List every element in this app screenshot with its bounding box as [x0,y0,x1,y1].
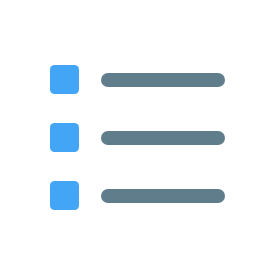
button[interactable]: List item 3 [0,181,275,210]
button[interactable]: List item 1 [0,65,275,94]
button[interactable]: List item 2 [0,123,275,152]
